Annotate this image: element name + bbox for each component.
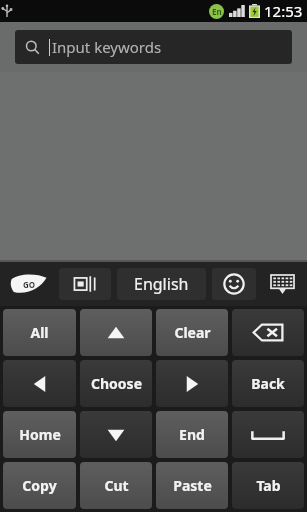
staticText: GO	[23, 279, 36, 290]
staticText: Input keywords	[52, 37, 162, 57]
staticText: Home	[19, 425, 61, 444]
staticText: Cut	[104, 476, 129, 495]
staticText: Back	[251, 374, 285, 393]
staticText: Choose	[91, 374, 142, 393]
staticText: Clear	[174, 323, 211, 342]
button[interactable]: Choose	[80, 360, 152, 407]
staticText: Copy	[22, 476, 57, 495]
staticText: Paste	[173, 476, 212, 495]
button[interactable]: Clear	[156, 309, 228, 356]
button[interactable]: Paste	[156, 462, 228, 509]
button[interactable]: Back	[232, 360, 304, 407]
staticText: All	[30, 323, 49, 342]
button[interactable]: All	[3, 309, 76, 356]
staticText: En	[212, 6, 222, 17]
button[interactable]: DOWN	[80, 411, 152, 458]
staticText: Tab	[256, 476, 281, 495]
staticText: 12:53	[264, 1, 303, 21]
button[interactable]: Cut	[80, 462, 152, 509]
button[interactable]: UP	[80, 309, 152, 356]
button[interactable]: Copy	[3, 462, 76, 509]
button[interactable]: Input keywords	[15, 30, 292, 64]
button[interactable]: Home	[3, 411, 76, 458]
button[interactable]: Hide keyboard	[262, 267, 302, 301]
button[interactable]: End	[156, 411, 228, 458]
button[interactable]: Emoji	[212, 268, 256, 300]
staticText: End	[179, 425, 205, 444]
button[interactable]: RIGHT	[156, 360, 228, 407]
button[interactable]: Tab	[232, 462, 304, 509]
button[interactable]: GO Keyboard	[5, 267, 53, 301]
button[interactable]: SPACE	[232, 411, 304, 458]
button[interactable]: BACKSPACE	[232, 309, 304, 356]
button[interactable]: LEFT	[3, 360, 76, 407]
staticText: English	[134, 273, 189, 295]
button[interactable]: Switch layout	[59, 268, 111, 300]
button[interactable]: English	[117, 268, 206, 300]
